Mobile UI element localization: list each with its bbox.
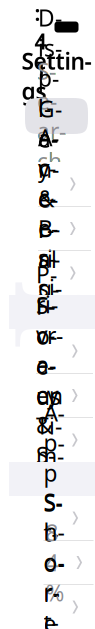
staticText: App Store	[43, 398, 64, 629]
button[interactable]: App Store	[27, 496, 93, 540]
staticText: Privacy & Security	[36, 259, 59, 621]
button[interactable]: Battery	[23, 540, 95, 584]
staticText: 84%	[45, 517, 64, 608]
staticText: Accessibility	[38, 122, 62, 423]
button[interactable]: General	[22, 162, 91, 206]
staticText: 9:41	[34, 0, 46, 84]
staticText: Settings	[21, 46, 91, 106]
button[interactable]: Display & Brightness	[22, 206, 91, 250]
staticText: Display & Brightness	[38, 3, 62, 454]
staticText: Shortcuts	[43, 487, 64, 629]
button[interactable]: Focus	[20, 329, 93, 373]
button[interactable]: Privacy & Security	[20, 418, 93, 462]
button[interactable]: Shortcuts	[27, 585, 93, 629]
button[interactable]: Accessibility	[22, 251, 91, 295]
staticText: Screen Time	[36, 290, 64, 501]
staticText: General	[38, 94, 62, 274]
staticText: Focus	[36, 291, 61, 411]
staticText: Search	[37, 56, 66, 176]
button[interactable]: Screen Time	[20, 373, 93, 417]
